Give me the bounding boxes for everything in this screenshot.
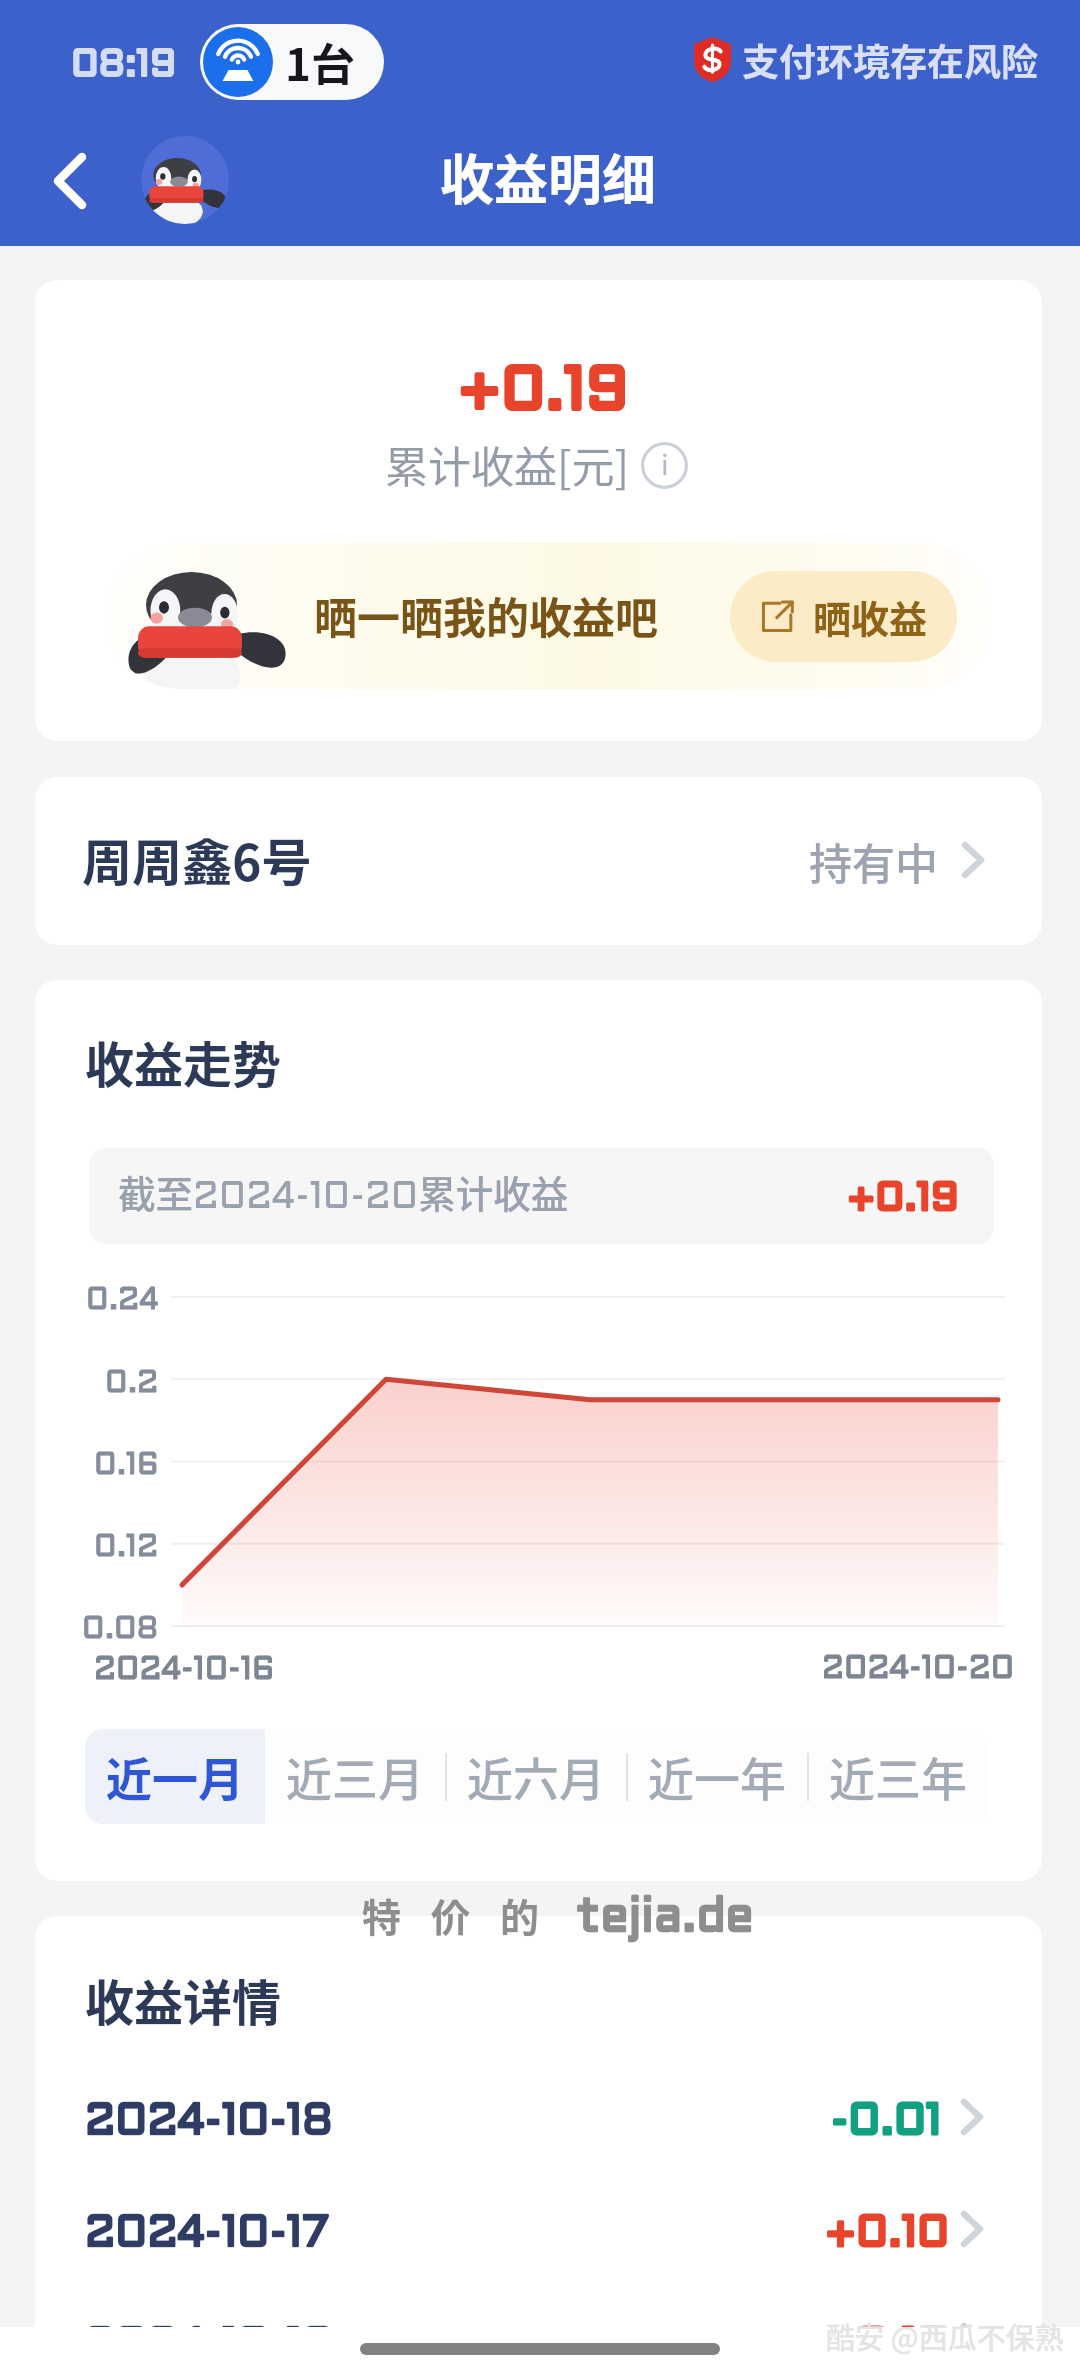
staticText: 近三年 [829,1743,967,1810]
staticText: 晒一晒我的收益吧 [314,584,658,646]
staticText: 截至2024-10-20累计收益 [118,1164,569,1218]
staticText: 0.2 [105,1370,159,1399]
staticText: +0.19 [847,1181,959,1218]
staticText: 收益走势 [85,1026,282,1097]
staticText: 2024-10-16 [85,2326,333,2367]
staticText: 持有中 [809,830,938,892]
staticText: 2024-10-20 [822,1655,1015,1685]
staticText: 近一年 [648,1743,786,1810]
button[interactable]: 晒一晒我的收益吧 [107,543,992,689]
button[interactable]: 2024-10-18 [35,2067,1042,2167]
staticText: +0.10 [825,2326,950,2367]
staticText: 累计收益[元] [385,433,630,495]
staticText: 1台 [285,30,355,94]
button[interactable]: Back [28,140,112,222]
staticText: 周周鑫6号 [82,823,312,895]
staticText: 2024-10-16 [85,2326,333,2367]
staticText: 08:19 [71,49,177,84]
staticText: 0.12 [94,1534,159,1563]
staticText: 收益详情 [85,1964,282,2035]
staticText: 0.08 [82,1616,159,1645]
staticText: 0.08 [82,1616,159,1645]
staticText: +0.19 [847,1181,959,1218]
button[interactable]: 近一年 [626,1729,807,1824]
staticText: +0.19 [458,365,629,422]
staticText: tejia.de [576,1897,754,1941]
staticText: 2024-10-16 [94,1656,275,1686]
button[interactable]: 周周鑫6号 [35,777,1042,945]
staticText: 2024-10-20 [822,1655,1015,1685]
staticText: 2024-10-16 [94,1656,275,1686]
staticText: 近六月 [467,1743,605,1810]
staticText: 0.2 [105,1370,159,1399]
button[interactable]: 近六月 [445,1729,626,1824]
button[interactable]: 近三年 [807,1729,988,1824]
staticText: 特价的 [362,1887,570,1943]
staticText: 晒收益 [813,589,928,644]
staticText: 08:19 [71,49,177,84]
button[interactable]: 近三月 [265,1729,445,1824]
staticText: +0.19 [458,365,629,422]
staticText: 2024-10-17 [85,2214,329,2255]
button[interactable]: 2024-10-17 [35,2179,1042,2279]
staticText: 2024-10-18 [85,2102,333,2143]
button[interactable]: 晒收益 [730,571,957,662]
staticText: 酷安 @西瓜不保熟 [826,2315,1064,2357]
staticText: 0.24 [86,1287,159,1316]
staticText: 收益明细 [440,137,656,215]
staticText: +0.10 [825,2214,950,2255]
staticText: 近一月 [106,1743,244,1810]
staticText: 2024-10-18 [85,2102,333,2143]
staticText: +0.10 [825,2214,950,2255]
staticText: tejia.de [576,1897,754,1941]
staticText: 近三月 [286,1743,424,1810]
button[interactable]: 2024-10-16 [35,2291,1042,2376]
staticText: 支付环境存在风险 [742,33,1038,87]
staticText: 0.16 [94,1452,159,1481]
button[interactable]: Wi-Fi devices [200,24,384,100]
button[interactable]: Profile [141,136,229,224]
staticText: 0.16 [94,1452,159,1481]
staticText: 0.12 [94,1534,159,1563]
staticText: i [661,443,669,484]
staticText: +0.10 [825,2326,950,2367]
button[interactable]: Info [641,442,688,489]
staticText: 0.24 [86,1287,159,1316]
staticText: 2024-10-17 [85,2214,329,2255]
button[interactable]: 近一月 [85,1729,265,1824]
staticText: -0.01 [831,2102,942,2143]
staticText: -0.01 [831,2102,942,2143]
